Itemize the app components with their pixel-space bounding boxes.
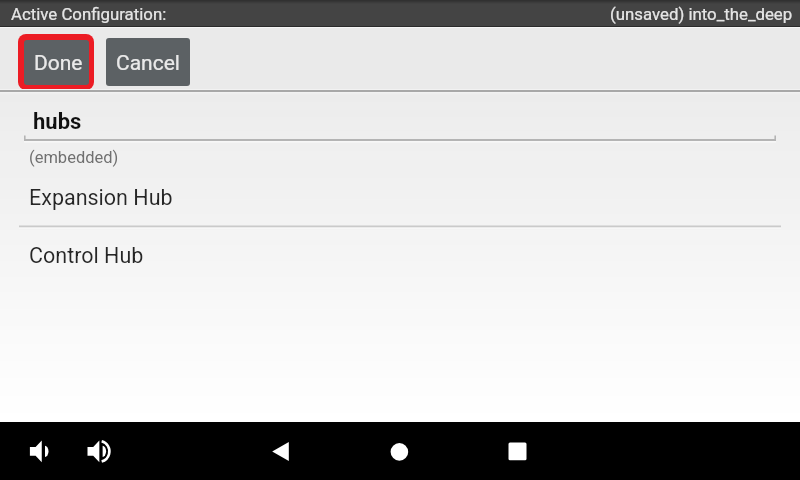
- button[interactable]: Volume down: [10, 422, 68, 480]
- button[interactable]: Cancel: [106, 38, 190, 86]
- button[interactable]: Control Hub: [0, 226, 800, 284]
- button[interactable]: Back: [251, 422, 309, 480]
- staticText: (unsaved) into_the_deep: [610, 4, 793, 24]
- button[interactable]: Recent apps: [488, 422, 546, 480]
- button[interactable]: Volume up: [68, 422, 126, 480]
- button[interactable]: Done: [18, 34, 94, 90]
- staticText: Done: [34, 51, 83, 76]
- staticText: Cancel: [116, 51, 180, 76]
- button[interactable]: Expansion Hub: [0, 168, 800, 226]
- button[interactable]: Home: [370, 422, 428, 480]
- staticText: (embedded): [29, 148, 119, 167]
- staticText: Control Hub: [29, 243, 144, 268]
- staticText: hubs: [33, 109, 82, 135]
- staticText: Expansion Hub: [29, 185, 173, 210]
- staticText: Active Configuration:: [11, 4, 167, 24]
